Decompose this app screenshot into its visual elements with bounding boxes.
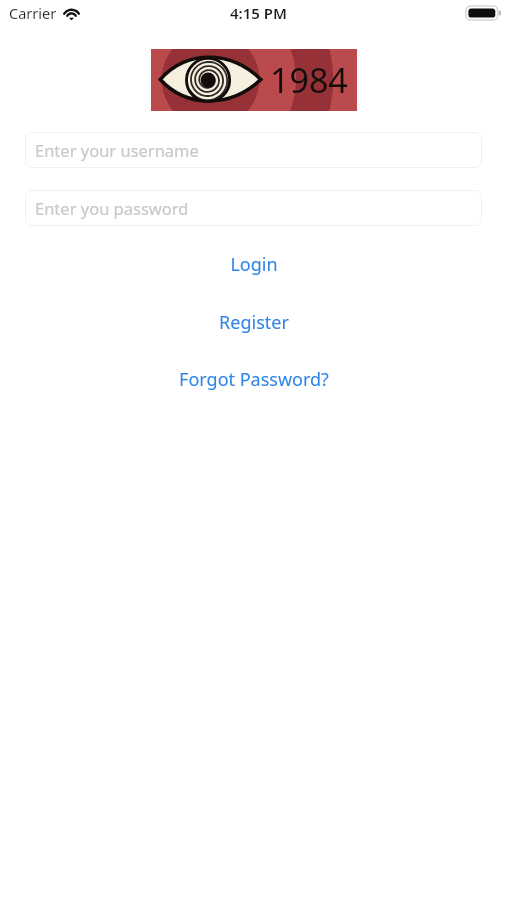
staticText: Register <box>219 310 289 335</box>
staticText: Login <box>230 252 278 277</box>
staticText: Enter your username <box>35 139 199 161</box>
button[interactable]: Enter you password <box>25 190 482 226</box>
other: Wi-Fi signal <box>63 7 80 20</box>
staticText: 1984 <box>270 57 348 103</box>
staticText: Carrier <box>9 3 57 23</box>
button[interactable]: Login <box>0 251 507 277</box>
button[interactable]: Register <box>0 309 507 335</box>
button[interactable]: Enter your username <box>25 132 482 168</box>
staticText: Forgot Password? <box>179 367 329 392</box>
other: Battery full <box>466 6 501 20</box>
staticText: 4:15 PM <box>230 3 287 23</box>
staticText: Enter you password <box>35 197 189 219</box>
button[interactable]: Forgot Password? <box>0 366 507 392</box>
